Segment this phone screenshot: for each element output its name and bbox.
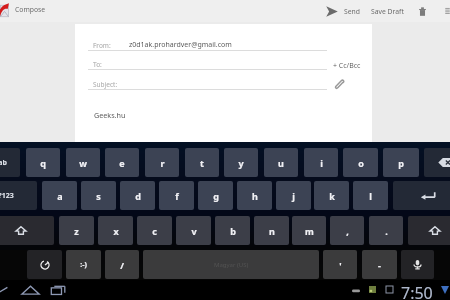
staticText: , xyxy=(346,225,349,237)
button[interactable]: u xyxy=(264,148,298,177)
staticText: y xyxy=(238,157,244,169)
button[interactable]: q xyxy=(26,148,60,177)
staticText: . xyxy=(385,225,388,237)
button[interactable]: h xyxy=(237,181,272,210)
button[interactable]: :-) xyxy=(66,250,101,279)
button[interactable]: From: xyxy=(93,41,111,50)
button[interactable]: s xyxy=(81,181,116,210)
button[interactable]: r xyxy=(145,148,179,177)
staticText: w xyxy=(79,157,87,169)
button[interactable]: , xyxy=(330,216,364,245)
staticText: / xyxy=(120,259,124,271)
button[interactable]: e xyxy=(105,148,139,177)
staticText: b xyxy=(230,225,236,237)
staticText: Compose xyxy=(15,5,46,14)
staticText: n xyxy=(269,225,275,237)
staticText: To: xyxy=(93,60,102,69)
button[interactable]: x xyxy=(98,216,133,245)
button[interactable]: enter xyxy=(393,181,450,210)
button[interactable]: m xyxy=(292,216,326,245)
staticText: e xyxy=(119,157,125,169)
staticText: tab xyxy=(0,158,7,168)
staticText: c xyxy=(152,225,157,237)
button[interactable]: z xyxy=(59,216,94,245)
button[interactable]: Discard xyxy=(414,2,431,20)
staticText: Magyar (US) xyxy=(214,261,249,269)
staticText: s xyxy=(96,190,101,202)
staticText: u xyxy=(278,157,284,169)
staticText: i xyxy=(320,157,323,169)
button[interactable]: o xyxy=(343,148,378,177)
button[interactable]: a xyxy=(42,181,77,210)
button[interactable]: w xyxy=(66,148,100,177)
button[interactable]: mic xyxy=(401,250,434,279)
button[interactable]: settings xyxy=(27,250,62,279)
staticText: Save Draft xyxy=(371,7,404,16)
staticText: 7:50 xyxy=(401,282,433,300)
staticText: f xyxy=(175,190,179,202)
staticText: ' xyxy=(339,259,342,271)
button[interactable]: To: xyxy=(93,60,102,69)
button[interactable]: y xyxy=(224,148,258,177)
button[interactable]: l xyxy=(353,181,388,210)
button[interactable]: Save Draft xyxy=(371,2,404,20)
button[interactable]: ' xyxy=(323,250,357,279)
button[interactable]: . xyxy=(369,216,403,245)
staticText: v xyxy=(191,225,197,237)
button[interactable]: - xyxy=(362,250,397,279)
button[interactable]: / xyxy=(105,250,139,279)
button[interactable]: Back xyxy=(0,280,10,300)
button[interactable]: Send xyxy=(326,2,360,20)
staticText: Send xyxy=(344,7,360,16)
staticText: o xyxy=(358,157,364,169)
button[interactable]: Compose xyxy=(15,5,46,14)
button[interactable]: f xyxy=(159,181,194,210)
button[interactable]: ?123 xyxy=(0,181,37,210)
staticText: k xyxy=(329,190,335,202)
button[interactable]: p xyxy=(383,148,419,177)
button[interactable]: g xyxy=(198,181,233,210)
staticText: :-) xyxy=(80,260,87,270)
staticText: From: xyxy=(93,41,111,50)
staticText: r xyxy=(160,157,165,169)
button[interactable]: Subject: xyxy=(93,80,118,89)
button[interactable]: k xyxy=(314,181,349,210)
button[interactable]: t xyxy=(185,148,219,177)
staticText: z xyxy=(74,225,79,237)
staticText: - xyxy=(378,259,381,271)
staticText: Subject: xyxy=(93,80,118,89)
button[interactable]: n xyxy=(254,216,289,245)
staticText: Geeks.hu xyxy=(94,110,126,120)
staticText: ?123 xyxy=(0,191,14,201)
button[interactable]: Recent apps xyxy=(48,280,68,300)
button[interactable]: shift xyxy=(408,216,450,245)
button[interactable]: b xyxy=(215,216,250,245)
staticText: j xyxy=(292,190,295,202)
button[interactable]: + Cc/Bcc xyxy=(332,59,362,73)
staticText: q xyxy=(40,157,46,169)
button[interactable]: Geeks.hu xyxy=(94,110,126,120)
staticText: h xyxy=(252,190,258,202)
button[interactable]: More options xyxy=(440,2,450,20)
button[interactable]: bksp xyxy=(424,148,450,177)
staticText: x xyxy=(113,225,119,237)
button[interactable]: v xyxy=(176,216,211,245)
staticText: m xyxy=(305,225,314,237)
staticText: a xyxy=(57,190,63,202)
button[interactable]: i xyxy=(304,148,338,177)
button[interactable]: shift xyxy=(0,216,54,245)
staticText: p xyxy=(398,157,404,169)
button[interactable]: c xyxy=(137,216,172,245)
staticText: d xyxy=(135,190,141,202)
staticText: z0d1ak.prohardver@gmail.com xyxy=(129,40,232,50)
button[interactable]: tab xyxy=(0,148,20,177)
button[interactable]: Home xyxy=(20,280,40,300)
button[interactable]: d xyxy=(120,181,155,210)
button[interactable]: j xyxy=(276,181,311,210)
button[interactable]: Compose app xyxy=(0,3,9,17)
staticText: t xyxy=(200,157,204,169)
staticText: + Cc/Bcc xyxy=(333,61,361,71)
staticText: l xyxy=(369,190,372,202)
button[interactable]: Attach file xyxy=(332,77,346,91)
